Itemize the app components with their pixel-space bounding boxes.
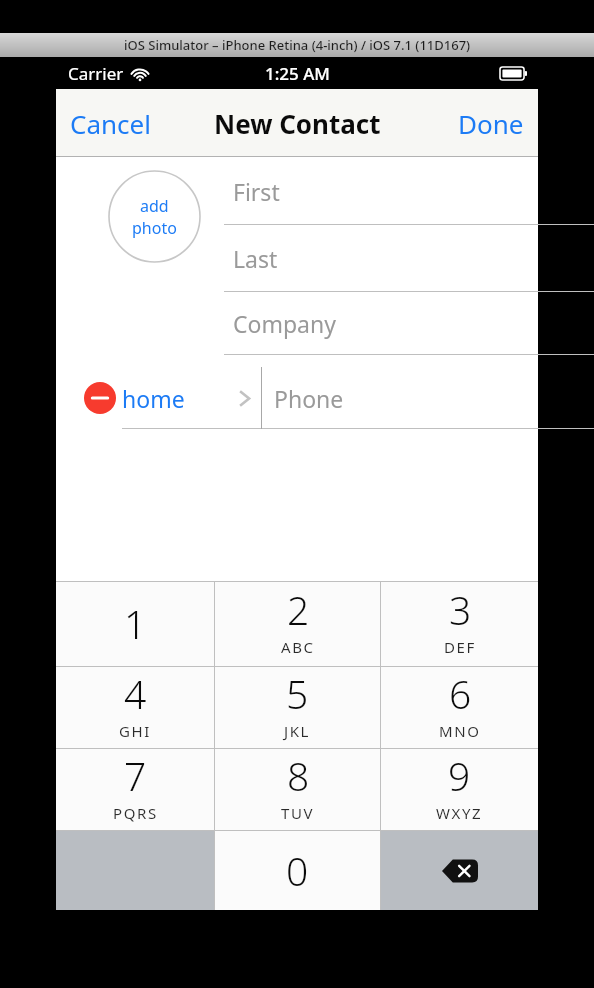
button[interactable]: 8 <box>215 749 380 830</box>
button[interactable]: Company <box>224 292 594 355</box>
staticText: Phone <box>274 383 344 414</box>
staticText: Done <box>458 106 524 141</box>
staticText: home <box>122 383 185 414</box>
staticText: Company <box>233 308 336 339</box>
staticText: PQRS <box>113 803 158 823</box>
staticText: TUV <box>281 803 315 823</box>
staticText: Last <box>233 243 278 274</box>
button[interactable]: 7 <box>56 749 214 830</box>
button[interactable]: home <box>122 367 262 429</box>
staticText: 4 <box>124 667 147 720</box>
staticText: add <box>140 195 169 217</box>
staticText: iOS Simulator – iPhone Retina (4-inch) /… <box>124 36 471 54</box>
staticText: 9 <box>448 749 471 802</box>
staticText: 1:25 AM <box>265 62 330 85</box>
button[interactable]: 6 <box>381 667 538 748</box>
button[interactable]: Remove phone field <box>74 367 126 429</box>
button[interactable]: Done <box>444 94 538 153</box>
button[interactable]: 4 <box>56 667 214 748</box>
staticText: 1 <box>124 597 147 650</box>
button[interactable]: First <box>224 157 594 225</box>
button[interactable]: 5 <box>215 667 380 748</box>
staticText: 3 <box>449 583 472 636</box>
staticText: 5 <box>286 667 309 720</box>
button[interactable]: Cancel <box>56 94 165 153</box>
button[interactable]: 2 <box>215 581 380 666</box>
button[interactable]: Last <box>224 225 594 292</box>
staticText: 0 <box>286 844 309 897</box>
staticText: New Contact <box>214 106 381 141</box>
staticText: Cancel <box>70 106 151 141</box>
button[interactable]: Phone <box>262 367 594 429</box>
staticText: JKL <box>284 721 311 741</box>
staticText: 2 <box>287 583 310 636</box>
button[interactable]: 1 <box>56 581 214 666</box>
button[interactable]: add <box>108 170 201 263</box>
staticText: Carrier <box>68 62 124 85</box>
staticText: GHI <box>119 721 151 741</box>
staticText: First <box>233 176 280 207</box>
staticText: ABC <box>281 637 315 657</box>
staticText: 7 <box>124 749 147 802</box>
staticText: photo <box>132 217 177 239</box>
button[interactable]: Delete <box>381 831 538 910</box>
button[interactable]: 3 <box>381 581 538 666</box>
staticText: MNO <box>439 721 481 741</box>
staticText: 8 <box>287 749 310 802</box>
staticText: DEF <box>444 637 476 657</box>
button[interactable]: 0 <box>215 831 380 910</box>
staticText: WXYZ <box>436 803 483 823</box>
button[interactable]: 9 <box>381 749 538 830</box>
staticText: 6 <box>449 667 472 720</box>
